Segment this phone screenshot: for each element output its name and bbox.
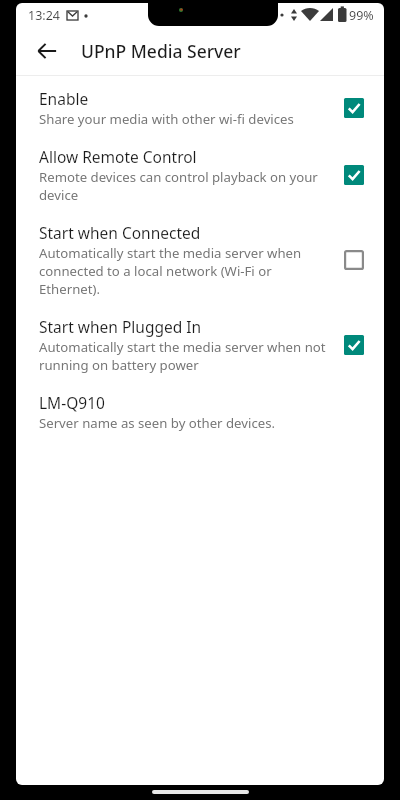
staticText: 99% bbox=[349, 7, 374, 24]
button[interactable]: Enable bbox=[16, 76, 384, 128]
button[interactable]: Allow Remote Control bbox=[16, 128, 384, 204]
staticText: Share your media with other wi-fi device… bbox=[39, 110, 294, 128]
button[interactable] bbox=[334, 325, 374, 365]
staticText: Remote devices can control playback on y… bbox=[39, 168, 326, 204]
staticText: Enable bbox=[39, 88, 89, 109]
button[interactable]: Start when Connected bbox=[16, 204, 384, 298]
button[interactable] bbox=[334, 240, 374, 280]
staticText: Start when Connected bbox=[39, 222, 201, 243]
staticText: 13:24 bbox=[28, 7, 60, 24]
staticText: Automatically start the media server whe… bbox=[39, 244, 326, 298]
staticText: Automatically start the media server whe… bbox=[39, 338, 326, 374]
staticText: Allow Remote Control bbox=[39, 146, 197, 167]
button[interactable]: Start when Plugged In bbox=[16, 298, 384, 374]
button[interactable] bbox=[334, 88, 374, 128]
button[interactable] bbox=[334, 155, 374, 195]
staticText: Start when Plugged In bbox=[39, 316, 202, 337]
staticText: UPnP Media Server bbox=[81, 39, 241, 63]
button[interactable]: Back bbox=[26, 30, 68, 72]
staticText: Server name as seen by other devices. bbox=[39, 414, 276, 432]
staticText: LM-Q910 bbox=[39, 392, 105, 413]
button[interactable]: LM-Q910 bbox=[16, 374, 384, 432]
